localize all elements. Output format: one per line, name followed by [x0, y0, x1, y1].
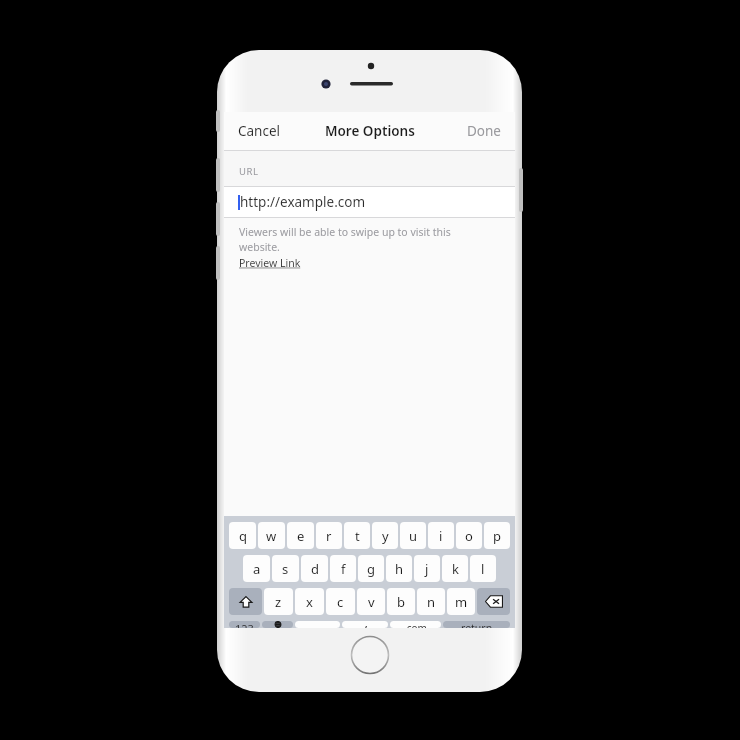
button[interactable]: i	[428, 522, 454, 549]
staticText: h	[395, 560, 404, 578]
staticText: Done	[467, 122, 501, 140]
staticText: f	[341, 560, 346, 578]
button[interactable]: z	[264, 588, 293, 615]
staticText: Preview Link	[239, 256, 301, 270]
staticText: a	[253, 560, 261, 578]
button[interactable]: q	[229, 522, 256, 549]
button[interactable]: h	[386, 555, 412, 582]
staticText: y	[382, 527, 389, 545]
button[interactable]: p	[484, 522, 510, 549]
button[interactable]: /	[342, 621, 388, 628]
staticText: i	[439, 527, 443, 545]
staticText: Viewers will be able to swipe up to visi…	[239, 225, 451, 239]
button[interactable]: b	[387, 588, 415, 615]
staticText: p	[493, 527, 501, 545]
staticText: m	[455, 593, 468, 611]
staticText: Cancel	[238, 122, 281, 140]
staticText: x	[306, 593, 313, 611]
button[interactable]: r	[316, 522, 342, 549]
button[interactable]: a	[243, 555, 270, 582]
staticText: l	[481, 560, 485, 578]
staticText: b	[397, 593, 405, 611]
button[interactable]: y	[372, 522, 398, 549]
staticText: j	[425, 560, 429, 578]
staticText: d	[311, 560, 319, 578]
button[interactable]: .com	[390, 621, 441, 628]
button[interactable]: f	[330, 555, 356, 582]
staticText: .com	[404, 621, 427, 628]
button[interactable]: l	[470, 555, 496, 582]
staticText: n	[427, 593, 436, 611]
staticText: URL	[239, 165, 259, 178]
staticText: http://example.com	[240, 193, 366, 211]
staticText: u	[409, 527, 418, 545]
staticText: v	[368, 593, 375, 611]
staticText: More Options	[325, 122, 415, 140]
staticText: o	[465, 527, 473, 545]
staticText: c	[337, 593, 344, 611]
button[interactable]: w	[258, 522, 285, 549]
staticText: r	[326, 527, 332, 545]
staticText: k	[452, 560, 459, 578]
staticText: z	[275, 593, 282, 611]
staticText: 123	[235, 621, 254, 628]
button[interactable]: k	[442, 555, 468, 582]
button[interactable]: http://example.com	[224, 187, 515, 217]
staticText: t	[355, 527, 360, 545]
button[interactable]: m	[447, 588, 475, 615]
staticText: return	[461, 621, 493, 628]
button[interactable]: Cancel	[224, 114, 295, 148]
button[interactable]: d	[301, 555, 328, 582]
button[interactable]: Switch keyboard language	[262, 621, 293, 628]
button[interactable]: x	[295, 588, 324, 615]
button[interactable]: Preview Link	[239, 256, 301, 270]
button[interactable]: n	[417, 588, 445, 615]
button[interactable]: Shift	[229, 588, 262, 615]
staticText: website.	[239, 240, 280, 254]
button[interactable]: j	[414, 555, 440, 582]
button[interactable]: e	[287, 522, 314, 549]
button[interactable]: o	[456, 522, 482, 549]
staticText: s	[282, 560, 289, 578]
staticText: w	[266, 527, 277, 545]
other: Home	[350, 635, 390, 675]
staticText: q	[239, 527, 247, 545]
button[interactable]: 123	[229, 621, 260, 628]
staticText: g	[367, 560, 375, 578]
staticText: /	[362, 621, 368, 628]
button[interactable]: s	[272, 555, 299, 582]
button[interactable]: Backspace	[477, 588, 510, 615]
button[interactable]: u	[400, 522, 426, 549]
staticText: e	[297, 527, 305, 545]
button[interactable]: return	[443, 621, 510, 628]
button[interactable]: v	[357, 588, 385, 615]
button[interactable]: g	[358, 555, 384, 582]
button[interactable]: c	[326, 588, 355, 615]
button[interactable]: Done	[453, 114, 515, 148]
button[interactable]: t	[344, 522, 370, 549]
button[interactable]: .	[295, 621, 340, 628]
